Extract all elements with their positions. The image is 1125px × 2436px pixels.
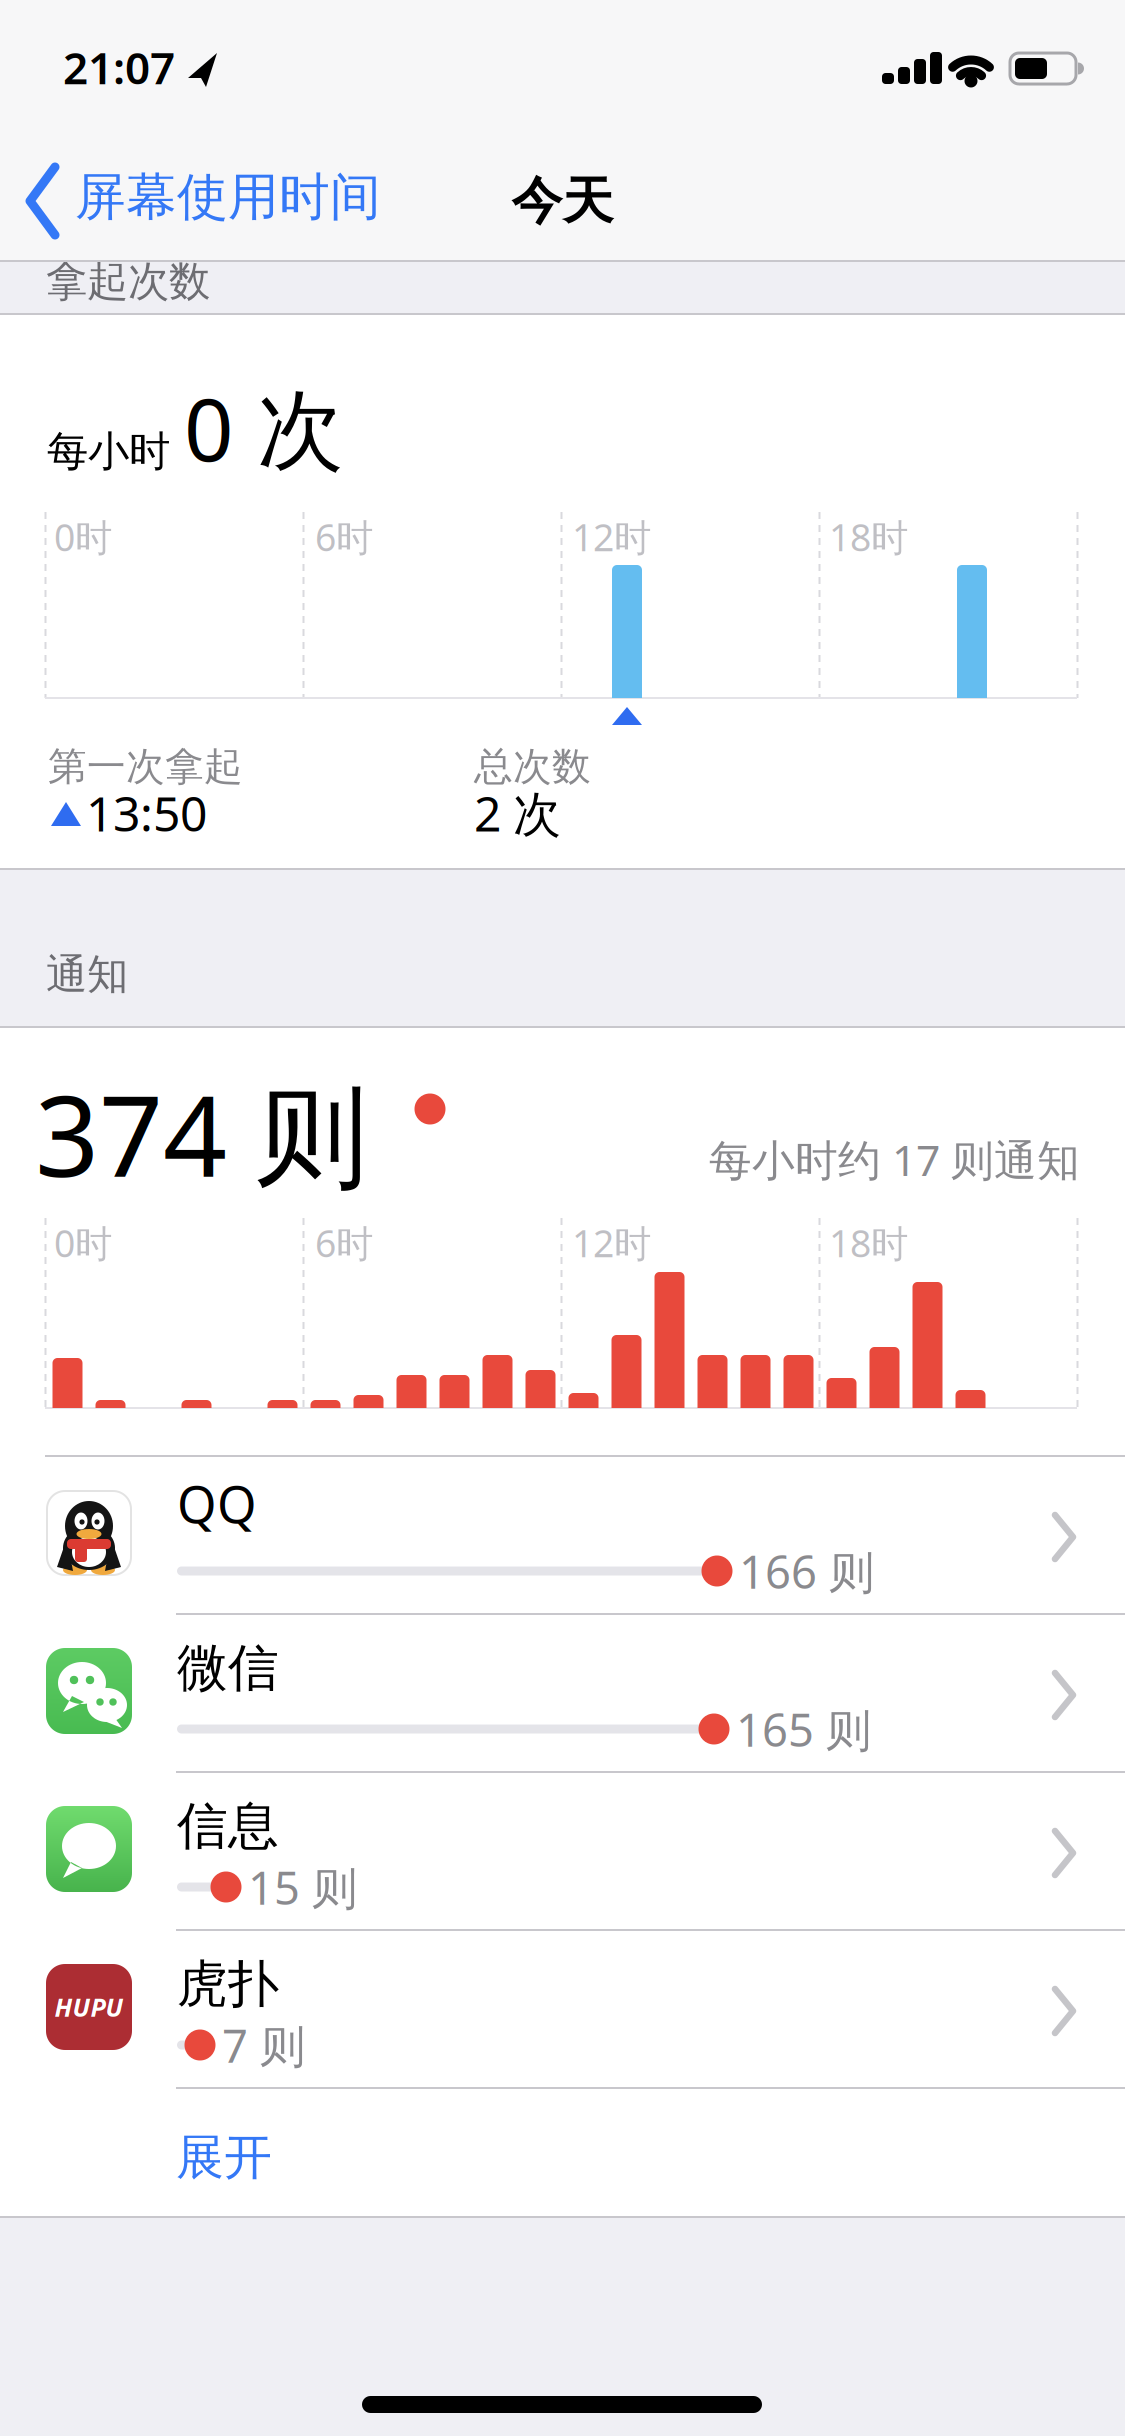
- staticText: 6时: [315, 1218, 373, 1268]
- staticText: 166 则: [739, 1541, 874, 1601]
- staticText: 虎扑: [177, 1953, 279, 2015]
- button[interactable]: 信息: [45, 1773, 1125, 1931]
- staticText: 0 次: [184, 370, 344, 485]
- button[interactable]: QQ: [45, 1457, 1125, 1615]
- staticText: 18时: [829, 512, 908, 562]
- staticText: 6时: [315, 512, 373, 562]
- staticText: 今天: [511, 170, 613, 232]
- staticText: 通知: [46, 949, 128, 1000]
- staticText: 0时: [54, 512, 112, 562]
- staticText: 12时: [572, 512, 651, 562]
- staticText: 7 则: [222, 2015, 305, 2075]
- staticText: 第一次拿起: [48, 743, 243, 790]
- staticText: 0时: [54, 1218, 112, 1268]
- staticText: 21:07: [63, 38, 175, 96]
- staticText: 13:50: [86, 781, 207, 845]
- staticText: 165 则: [736, 1699, 871, 1759]
- staticText: 拿起次数: [46, 256, 210, 307]
- button[interactable]: 返回屏幕使用时间: [22, 160, 642, 255]
- staticText: 15 则: [248, 1857, 357, 1917]
- button[interactable]: 展开: [176, 2128, 346, 2198]
- staticText: 12时: [572, 1218, 651, 1268]
- staticText: QQ: [177, 1470, 257, 1537]
- staticText: 374 则: [35, 1059, 368, 1208]
- staticText: 屏幕使用时间: [75, 166, 381, 228]
- button[interactable]: 微信: [45, 1615, 1125, 1773]
- staticText: 微信: [177, 1637, 279, 1699]
- staticText: HUPU: [54, 1990, 123, 2024]
- staticText: 展开: [176, 2128, 272, 2187]
- staticText: 18时: [829, 1218, 908, 1268]
- button[interactable]: HUPU: [45, 1931, 1125, 2089]
- staticText: 每小时: [47, 426, 170, 477]
- staticText: 2 次: [474, 781, 561, 845]
- staticText: 信息: [177, 1795, 279, 1857]
- staticText: 每小时约 17 则通知: [709, 1131, 1080, 1188]
- staticText: 总次数: [474, 743, 591, 790]
